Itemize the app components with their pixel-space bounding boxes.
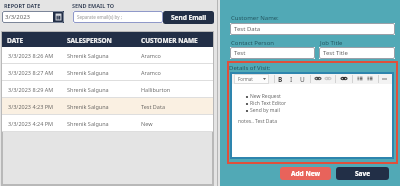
staticText: Contact Person [231,39,274,47]
button[interactable]: Test Title [319,47,395,59]
staticText: Add New [291,169,321,178]
button[interactable]: Test Data [230,23,395,35]
staticText: Details of Visit: [229,64,271,72]
staticText: SEND EMAIL TO [72,2,115,9]
button[interactable]: 3/3/2023 8:27 AM [2,64,213,81]
other: Format dropdown [263,78,266,80]
staticText: Shrenik Salguna [67,52,109,59]
button[interactable]: Insert link [325,76,331,81]
staticText: 3/3/2023 4:23 PM [8,103,54,110]
staticText: Shrenik Salguna [67,69,109,76]
button[interactable]: I [290,75,293,84]
button[interactable]: Insert link [341,76,347,81]
staticText: New Request [250,93,281,100]
staticText: Test Data [141,103,165,110]
staticText: New [141,120,153,127]
staticText: REPORT DATE [4,2,41,9]
button[interactable]: Open calendar [53,11,64,23]
button[interactable]: List [367,76,373,81]
staticText: Aramco [141,69,161,76]
button[interactable]: 3/3/2023 4:24 PM [2,115,213,132]
staticText: Save [355,169,371,178]
button[interactable]: 3/3/2023 4:23 PM [2,98,213,115]
staticText: Aramco [141,52,161,59]
button[interactable]: Insert link [315,76,321,81]
staticText: 3/3/2023 8:26 AM [8,52,54,59]
staticText: 3/3/2023 [5,13,53,21]
staticText: Test Data [234,25,261,33]
staticText: notes.. Test Data [238,118,277,125]
button[interactable]: 3/3/2023 8:29 AM [2,81,213,98]
staticText: Test [234,49,246,57]
staticText: DATE [7,36,24,45]
staticText: CUSTOMER NAME [141,36,198,45]
button[interactable]: 3/3/2023 8:26 AM [2,47,213,64]
button[interactable]: Test [230,47,315,59]
staticText: 3/3/2023 8:29 AM [8,86,54,93]
staticText: Shrenik Salguna [67,103,109,110]
staticText: Separate email(s) by ; [77,14,122,20]
staticText: Test Title [323,49,348,57]
button[interactable]: 3/3/2023 [2,11,64,23]
staticText: Shrenik Salguna [67,86,109,93]
staticText: Rich Text Editor [250,100,287,107]
staticText: 3/3/2023 4:24 PM [8,120,54,127]
staticText: Send Email [171,13,207,22]
staticText: Send by mail [250,107,280,114]
button[interactable]: List [357,76,363,81]
staticText: Halliburton [141,86,171,93]
button[interactable]: B [278,75,283,84]
button[interactable]: Save [336,167,389,180]
staticText: Customer Name: [231,14,279,22]
button[interactable]: Send Email [163,11,214,24]
button[interactable]: Format [234,74,269,84]
staticText: Shrenik Salguna [67,120,109,127]
staticText: Format [238,76,253,82]
staticText: 3/3/2023 8:27 AM [8,69,54,76]
staticText: Job Title [320,39,343,47]
staticText: SALESPERSON [67,36,112,45]
button[interactable]: Separate email(s) by ; [73,11,163,23]
button[interactable]: Add New [280,167,331,180]
button[interactable]: U [300,75,305,84]
